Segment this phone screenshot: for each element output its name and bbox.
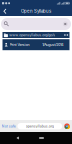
staticText: Not safe bbox=[2, 124, 16, 128]
button[interactable]: 1/August/2014 bbox=[36, 39, 69, 50]
button[interactable]: Back bbox=[0, 6, 9, 16]
button[interactable]: opensyllabus.org bbox=[17, 123, 62, 129]
button[interactable]: Print Version bbox=[2, 39, 36, 50]
staticText: Print Version bbox=[9, 42, 29, 47]
button[interactable]: Open in app bbox=[64, 123, 70, 130]
button[interactable]: Search or type web address bbox=[1, 18, 71, 30]
staticText: Open Syllabus bbox=[21, 9, 51, 14]
staticText: opensyllabus.org bbox=[26, 124, 54, 128]
button[interactable]: Home bbox=[36, 132, 47, 144]
button[interactable]: Not safe bbox=[2, 123, 16, 130]
staticText: www.opensyllabus.org/go/s bbox=[9, 33, 55, 37]
staticText: 1/August/2014 bbox=[42, 42, 63, 47]
button[interactable]: Back bbox=[12, 132, 23, 144]
